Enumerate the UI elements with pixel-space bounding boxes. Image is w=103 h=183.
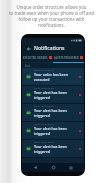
button[interactable]: 09.01.2019 23:05: [22, 68, 84, 85]
button[interactable]: 09.01.2019 23:05: [22, 122, 84, 139]
staticText: 09.01.2019 23:05: [34, 104, 54, 107]
staticText: ALERTS TRIGGERED: [54, 56, 79, 60]
staticText: Your alert has been triggered: [34, 108, 77, 118]
staticText: Your order has been executed: [34, 72, 77, 82]
staticText: List: [25, 64, 30, 68]
button[interactable]: 09.01.2019 23:05: [22, 140, 84, 157]
staticText: 09.01.2019 23:05: [34, 140, 54, 143]
button[interactable]: 09.01.2019 23:05: [22, 86, 84, 103]
button[interactable]: 09.01.2019 23:05: [22, 104, 84, 121]
staticText: to trade even when your phone is off and: [9, 10, 94, 16]
staticText: notifications.: [38, 22, 65, 28]
staticText: Notifications: [34, 45, 65, 52]
staticText: 09.01.2019 23:05: [34, 122, 54, 125]
staticText: Your alert has been triggered: [34, 90, 77, 100]
button[interactable]: Back: [25, 45, 32, 52]
staticText: Your alert has been triggered: [34, 144, 77, 154]
staticText: follow up your transactions with: [18, 16, 85, 22]
button[interactable]: Back: [32, 164, 39, 171]
staticText: Your alert has been triggered: [34, 126, 77, 136]
staticText: 09.01.2019 23:05: [34, 86, 54, 89]
staticText: 09.01.2019 23:05: [34, 68, 54, 71]
button[interactable]: EXECUTED ORDERS: [22, 53, 53, 62]
button[interactable]: Recents: [67, 164, 74, 171]
staticText: Unique order structure allows you: [16, 4, 87, 10]
button[interactable]: Home: [50, 164, 57, 171]
staticText: EXECUTED ORDERS: [23, 56, 48, 60]
button[interactable]: ALERTS TRIGGERED: [53, 53, 84, 62]
